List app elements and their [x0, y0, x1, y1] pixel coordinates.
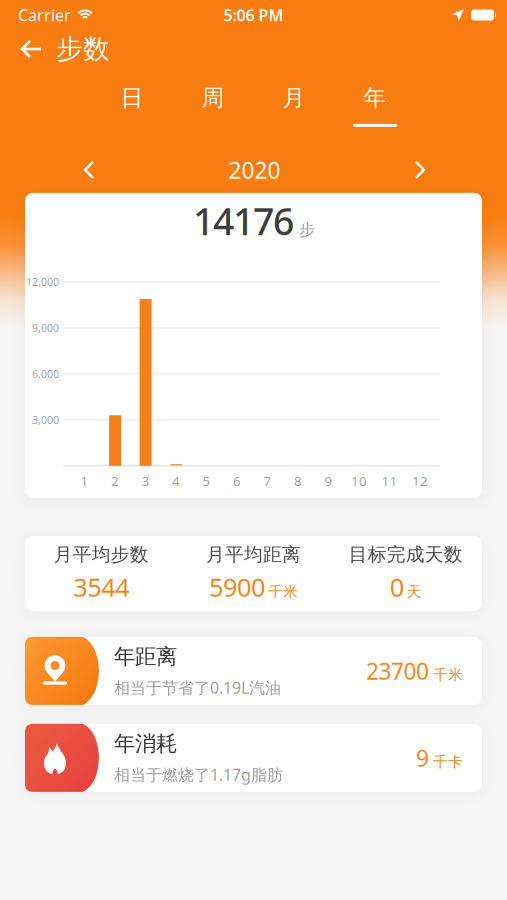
staticText: 5	[203, 472, 211, 490]
button[interactable]: 月	[253, 84, 334, 127]
staticText: 10	[351, 472, 367, 490]
staticText: 5:06 PM	[223, 4, 283, 26]
staticText: 1	[81, 472, 89, 490]
staticText: 月平均距离	[206, 543, 301, 566]
staticText: 9,000	[32, 321, 59, 335]
staticText: 年距离	[114, 644, 177, 670]
button[interactable]: 周	[172, 84, 253, 127]
staticText: 周	[201, 84, 224, 112]
staticText: 7	[264, 472, 272, 490]
staticText: 天	[407, 583, 422, 601]
staticText: 月平均步数	[54, 543, 149, 566]
staticText: 5900	[209, 570, 265, 604]
staticText: 日	[120, 84, 143, 112]
staticText: 步数	[56, 33, 110, 65]
button[interactable]: Back	[20, 39, 43, 59]
staticText: 相当于节省了0.19L汽油	[114, 677, 281, 698]
staticText: 0	[390, 570, 404, 604]
staticText: 年消耗	[114, 731, 177, 757]
staticText: 23700	[366, 656, 429, 686]
staticText: 3544	[73, 570, 129, 604]
button[interactable]: Next year	[413, 161, 425, 179]
staticText: 步	[299, 220, 315, 240]
staticText: 3,000	[32, 413, 59, 427]
staticText: 目标完成天数	[349, 543, 463, 566]
staticText: 9	[416, 743, 429, 773]
staticText: 2020	[228, 155, 280, 185]
staticText: 相当于燃烧了1.17g脂肪	[114, 764, 283, 785]
staticText: 8	[294, 472, 302, 490]
staticText: 14176	[193, 196, 294, 246]
staticText: 2	[111, 472, 119, 490]
staticText: 6,000	[32, 367, 59, 381]
staticText: 千米	[433, 666, 463, 684]
staticText: 6	[233, 472, 241, 490]
button[interactable]: 年	[334, 84, 415, 127]
staticText: 3	[142, 472, 150, 490]
staticText: 千卡	[433, 753, 463, 771]
staticText: 月	[282, 84, 305, 112]
staticText: 4	[172, 472, 180, 490]
button[interactable]: 年消耗	[25, 724, 482, 792]
staticText: 11	[382, 472, 398, 490]
button[interactable]: 年距离	[25, 637, 482, 705]
staticText: Carrier	[18, 4, 71, 26]
staticText: 12	[412, 472, 428, 490]
button[interactable]: 日	[91, 84, 172, 127]
button[interactable]: Previous year	[84, 161, 96, 179]
staticText: 12,000	[26, 275, 59, 289]
staticText: 千米	[268, 583, 298, 601]
staticText: 年	[363, 84, 386, 112]
staticText: 9	[325, 472, 333, 490]
